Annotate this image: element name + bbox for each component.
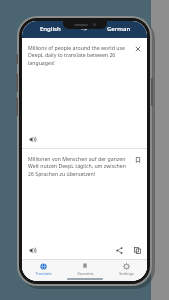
staticText: German [107, 25, 131, 33]
button[interactable]: Listen to source text [27, 134, 37, 144]
button[interactable]: Save to favorites [133, 155, 143, 165]
button[interactable]: Translate [23, 259, 63, 281]
button[interactable]: Listen to translation [27, 245, 37, 255]
button[interactable]: English [22, 21, 78, 37]
button[interactable]: German [90, 21, 147, 37]
button[interactable]: Share [114, 245, 124, 255]
staticText: Settings [119, 271, 134, 276]
button[interactable]: Swap languages [78, 23, 90, 35]
button[interactable]: Settings [106, 259, 146, 281]
staticText: Millions of people around the world use … [28, 44, 133, 67]
staticText: Translate [35, 271, 52, 276]
staticText: English [40, 25, 61, 33]
button[interactable]: Copy [132, 245, 142, 255]
staticText: Favorites [77, 271, 94, 276]
staticText: Millionen von Menschen auf der ganzen We… [28, 155, 133, 178]
button[interactable]: Clear text [133, 44, 143, 54]
button[interactable]: Favorites [65, 259, 105, 281]
